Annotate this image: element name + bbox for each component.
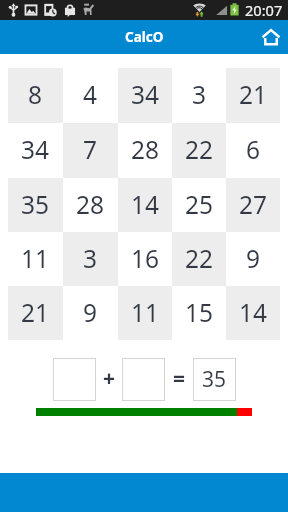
button[interactable]: 9 [63, 286, 118, 340]
staticText: 20:07 [245, 0, 283, 20]
staticText: 34 [21, 133, 50, 166]
staticText: 9 [83, 296, 98, 329]
staticText: 21 [239, 78, 268, 111]
button[interactable]: 9 [226, 232, 280, 286]
button[interactable]: 28 [63, 178, 118, 232]
staticText: 28 [131, 133, 160, 166]
staticText: 22 [185, 133, 214, 166]
button[interactable]: 14 [226, 286, 280, 340]
staticText: 28 [76, 188, 105, 221]
button[interactable]: 8 [8, 68, 63, 123]
button[interactable]: 4 [63, 68, 118, 123]
button[interactable]: 25 [172, 178, 226, 232]
staticText: 14 [131, 188, 160, 221]
button[interactable]: 22 [172, 232, 226, 286]
staticText: 27 [239, 188, 268, 221]
button[interactable]: 34 [118, 68, 172, 123]
staticText: 4 [83, 78, 98, 111]
button[interactable] [122, 358, 165, 401]
staticText: 6 [246, 133, 261, 166]
staticText: 25 [185, 188, 214, 221]
staticText: 11 [21, 242, 50, 275]
button[interactable]: 15 [172, 286, 226, 340]
staticText: 3 [83, 242, 98, 275]
staticText: 11 [131, 296, 160, 329]
button[interactable]: 16 [118, 232, 172, 286]
staticText: 8 [28, 78, 43, 111]
staticText: 21 [21, 296, 50, 329]
staticText: 14 [239, 296, 268, 329]
staticText: 35 [21, 188, 50, 221]
button[interactable]: 21 [8, 286, 63, 340]
button[interactable]: 6 [226, 123, 280, 178]
staticText: 34 [131, 78, 160, 111]
button[interactable]: 35 [8, 178, 63, 232]
staticText: 3 [192, 78, 207, 111]
button[interactable]: 3 [172, 68, 226, 123]
button[interactable]: 11 [118, 286, 172, 340]
button[interactable]: 35 [193, 358, 236, 401]
button[interactable]: 22 [172, 123, 226, 178]
staticText: 22 [185, 242, 214, 275]
staticText: 35 [202, 365, 227, 394]
button[interactable]: Home [255, 21, 287, 53]
staticText: 15 [185, 296, 214, 329]
staticText: CalcO [125, 28, 164, 46]
button[interactable]: 34 [8, 123, 63, 178]
button[interactable]: 27 [226, 178, 280, 232]
button[interactable]: 7 [63, 123, 118, 178]
button[interactable]: 11 [8, 232, 63, 286]
staticText: + [103, 364, 116, 393]
staticText: = [173, 364, 186, 393]
staticText: 9 [246, 242, 261, 275]
staticText: 16 [131, 242, 160, 275]
button[interactable]: 3 [63, 232, 118, 286]
button[interactable]: 14 [118, 178, 172, 232]
button[interactable]: 21 [226, 68, 280, 123]
staticText: 7 [83, 133, 98, 166]
button[interactable]: 28 [118, 123, 172, 178]
button[interactable] [53, 358, 96, 401]
